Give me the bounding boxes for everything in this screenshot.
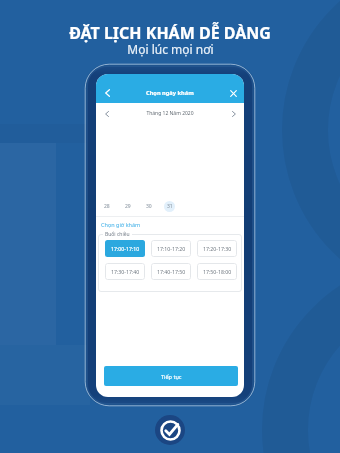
staticText: 17:20-17:30	[203, 245, 232, 252]
button[interactable]: 29	[117, 200, 138, 213]
button[interactable]: 17:30-17:40	[105, 263, 145, 280]
button[interactable]: Back	[100, 86, 114, 100]
button[interactable]: 17:40-17:50	[151, 263, 191, 280]
staticText: 17:40-17:50	[157, 268, 186, 275]
staticText: 17:00-17:10	[111, 245, 140, 252]
button[interactable]: 17:20-17:30	[197, 240, 237, 257]
button[interactable]: 31	[159, 200, 180, 213]
button[interactable]: 28	[96, 200, 117, 213]
staticText: ĐẶT LỊCH KHÁM DỄ DÀNG	[69, 22, 271, 44]
staticText: Buổi chiều	[105, 231, 130, 238]
staticText: 17:50-18:00	[203, 268, 232, 275]
staticText: 28	[104, 203, 110, 210]
staticText: 17:10-17:20	[157, 245, 186, 252]
staticText: 17:30-17:40	[111, 268, 140, 275]
staticText: Chọn giờ khám	[101, 221, 141, 228]
button[interactable]: Close	[226, 86, 240, 100]
button[interactable]: 30	[138, 200, 159, 213]
button[interactable]: Next month	[227, 107, 240, 120]
button[interactable]: Confirm	[155, 415, 185, 445]
button[interactable]: Previous month	[100, 107, 113, 120]
staticText: 30	[146, 203, 152, 210]
staticText: Tiếp tục	[161, 373, 182, 380]
staticText: Mọi lúc mọi nơi	[127, 41, 214, 57]
button[interactable]: 17:00-17:10	[105, 240, 145, 257]
staticText: Tháng 12 Năm 2020	[113, 110, 227, 117]
staticText: 29	[125, 203, 131, 210]
staticText: Chọn ngày khám	[146, 89, 194, 97]
button[interactable]: 17:10-17:20	[151, 240, 191, 257]
button[interactable]: Tiếp tục	[104, 366, 238, 386]
staticText: 31	[167, 203, 173, 210]
button[interactable]: 17:50-18:00	[197, 263, 237, 280]
